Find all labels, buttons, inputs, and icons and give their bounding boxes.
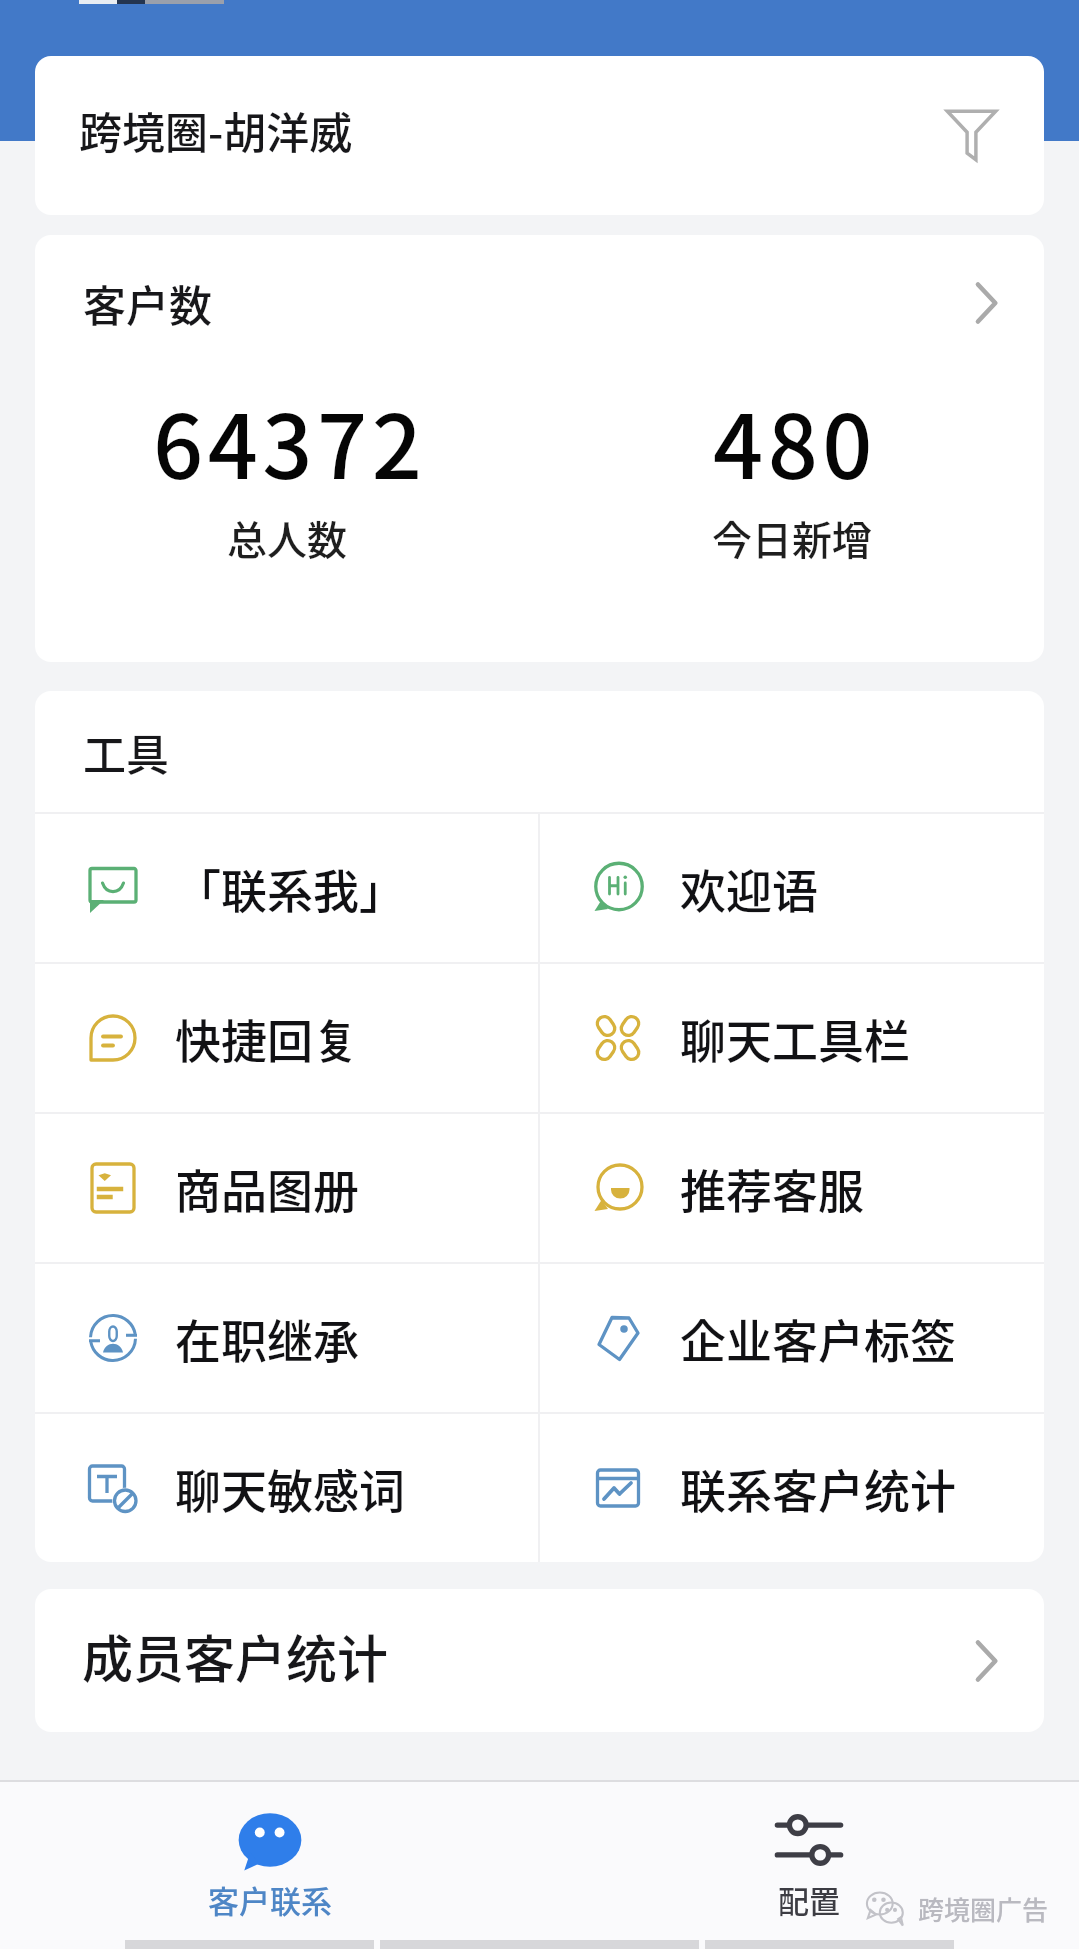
button[interactable]: 商品图册 [35, 1114, 538, 1262]
staticText: 配置 [778, 1877, 840, 1922]
staticText: 快捷回复 [175, 1005, 359, 1072]
button[interactable]: 推荐客服 [540, 1114, 1044, 1262]
button[interactable]: 企业客户标签 [540, 1264, 1044, 1412]
button[interactable]: 聊天敏感词 [35, 1414, 538, 1562]
staticText: 推荐客服 [680, 1155, 864, 1222]
button[interactable]: 联系客户统计 [540, 1414, 1044, 1562]
button[interactable]: 跨境圈-胡洋威 [35, 56, 1044, 215]
staticText: 64372 [153, 377, 427, 504]
staticText: 工具 [83, 721, 169, 783]
staticText: 480 [713, 377, 877, 504]
button[interactable]: 成员客户统计 [35, 1589, 1044, 1732]
staticText: 今日新增 [712, 509, 872, 567]
staticText: 跨境圈-胡洋威 [79, 99, 353, 161]
staticText: 在职继承 [175, 1305, 359, 1372]
staticText: 成员客户统计 [82, 1619, 389, 1693]
button[interactable]: 欢迎语 [540, 814, 1044, 962]
button[interactable]: Filter [944, 108, 999, 163]
staticText: 总人数 [227, 509, 347, 567]
staticText: 「联系我」 [175, 855, 405, 922]
button[interactable]: 在职继承 [35, 1264, 538, 1412]
button[interactable]: 配置 [539, 1782, 1079, 1949]
button[interactable]: 聊天工具栏 [540, 964, 1044, 1112]
button[interactable]: 「联系我」 [35, 814, 538, 962]
button[interactable]: 客户联系 [0, 1782, 539, 1949]
staticText: 客户联系 [208, 1877, 332, 1922]
staticText: 联系客户统计 [680, 1455, 956, 1522]
staticText: 聊天工具栏 [680, 1005, 910, 1072]
button[interactable]: 客户数 [35, 235, 1044, 370]
staticText: 跨境圈广告 [918, 1890, 1049, 1928]
staticText: 商品图册 [175, 1155, 359, 1222]
button[interactable]: 快捷回复 [35, 964, 538, 1112]
staticText: 欢迎语 [680, 855, 818, 922]
staticText: 企业客户标签 [680, 1305, 956, 1372]
staticText: 聊天敏感词 [175, 1455, 405, 1522]
staticText: 客户数 [83, 272, 212, 334]
